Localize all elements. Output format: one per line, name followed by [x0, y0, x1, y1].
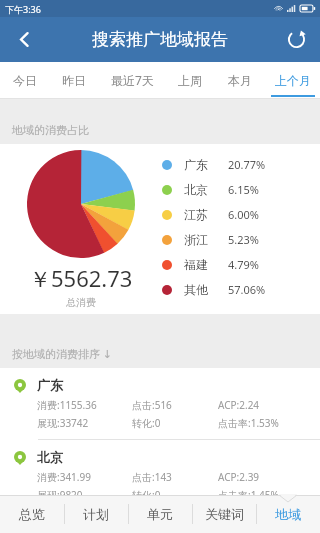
staticText: 本月	[228, 73, 252, 88]
button[interactable]: 地域	[256, 495, 320, 533]
staticText: 总消费	[66, 296, 96, 309]
staticText: 消费:341.99	[37, 470, 132, 484]
staticText: 6.00%	[228, 207, 259, 222]
staticText: 转化:0	[132, 488, 218, 495]
button[interactable]: 上周	[165, 62, 215, 98]
staticText: 展现:33742	[37, 416, 132, 430]
staticText: 计划	[83, 506, 109, 522]
staticText: 消费:1155.36	[37, 398, 132, 412]
button[interactable]: 今日	[0, 62, 49, 98]
staticText: 按地域的消费排序 ↓	[12, 346, 113, 361]
staticText: 20.77%	[228, 157, 266, 172]
staticText: ACP:2.39	[218, 470, 308, 484]
button[interactable]: 总览	[0, 495, 64, 533]
button[interactable]: Back	[0, 17, 48, 62]
staticText: 点击:516	[132, 398, 218, 412]
staticText: ACP:2.24	[218, 398, 308, 412]
staticText: 北京	[184, 182, 228, 197]
staticText: 单元	[147, 506, 173, 522]
staticText: 点击:143	[132, 470, 218, 484]
staticText: 上周	[178, 73, 202, 88]
staticText: 昨日	[62, 73, 86, 88]
button[interactable]: 单元	[128, 495, 192, 533]
staticText: 展现:9820	[37, 488, 132, 495]
staticText: ￥5562.73	[29, 263, 133, 293]
staticText: 福建	[184, 257, 228, 272]
staticText: 转化:0	[132, 416, 218, 430]
staticText: 上个月	[275, 73, 311, 88]
staticText: 6.15%	[228, 182, 259, 197]
button[interactable]: Refresh	[272, 17, 320, 62]
staticText: 总览	[19, 506, 45, 522]
button[interactable]: 最近7天	[99, 62, 165, 98]
staticText: 5.23%	[228, 232, 259, 247]
button[interactable]: 广东	[0, 368, 320, 440]
button[interactable]: 计划	[64, 495, 128, 533]
button[interactable]: 关键词	[192, 495, 256, 533]
staticText: 地域	[275, 506, 301, 522]
staticText: 最近7天	[111, 72, 154, 88]
staticText: 4.79%	[228, 257, 259, 272]
staticText: 点击率:1.53%	[218, 416, 308, 430]
staticText: 今日	[13, 73, 37, 88]
staticText: 江苏	[184, 207, 228, 222]
staticText: 下午3:36	[5, 3, 41, 15]
staticText: 北京	[37, 449, 63, 465]
staticText: 地域的消费占比	[12, 123, 89, 137]
staticText: 浙江	[184, 232, 228, 247]
button[interactable]: 北京	[0, 440, 320, 495]
staticText: 搜索推广地域报告	[92, 29, 228, 50]
staticText: 广东	[37, 377, 63, 393]
button[interactable]: 昨日	[49, 62, 99, 98]
staticText: 关键词	[205, 506, 244, 522]
button[interactable]: 本月	[215, 62, 265, 98]
staticText: 广东	[184, 157, 228, 172]
button[interactable]: 上个月	[265, 62, 320, 98]
staticText: 其他	[184, 282, 228, 297]
staticText: 57.06%	[228, 282, 266, 297]
staticText: 点击率:1.45%	[218, 488, 308, 495]
